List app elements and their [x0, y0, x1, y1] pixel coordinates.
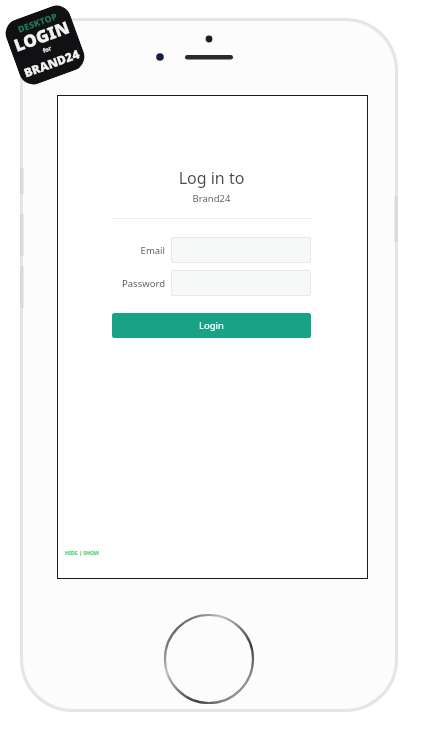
staticText: DESKTOP — [16, 10, 58, 35]
staticText: for — [42, 44, 53, 55]
button[interactable] — [171, 270, 311, 296]
button[interactable] — [171, 237, 311, 263]
button[interactable]: Login — [112, 313, 311, 338]
staticText: HIDE | SHOW — [65, 549, 100, 556]
staticText: Log in to — [98, 167, 325, 189]
staticText: BRAND24 — [21, 45, 81, 80]
staticText: Password — [122, 277, 165, 290]
staticText: Brand24 — [98, 192, 325, 205]
staticText: Login — [199, 319, 224, 332]
staticText: LOGIN — [11, 15, 73, 57]
staticText: Email — [140, 244, 165, 257]
button[interactable]: HIDE | SHOW — [64, 548, 101, 557]
